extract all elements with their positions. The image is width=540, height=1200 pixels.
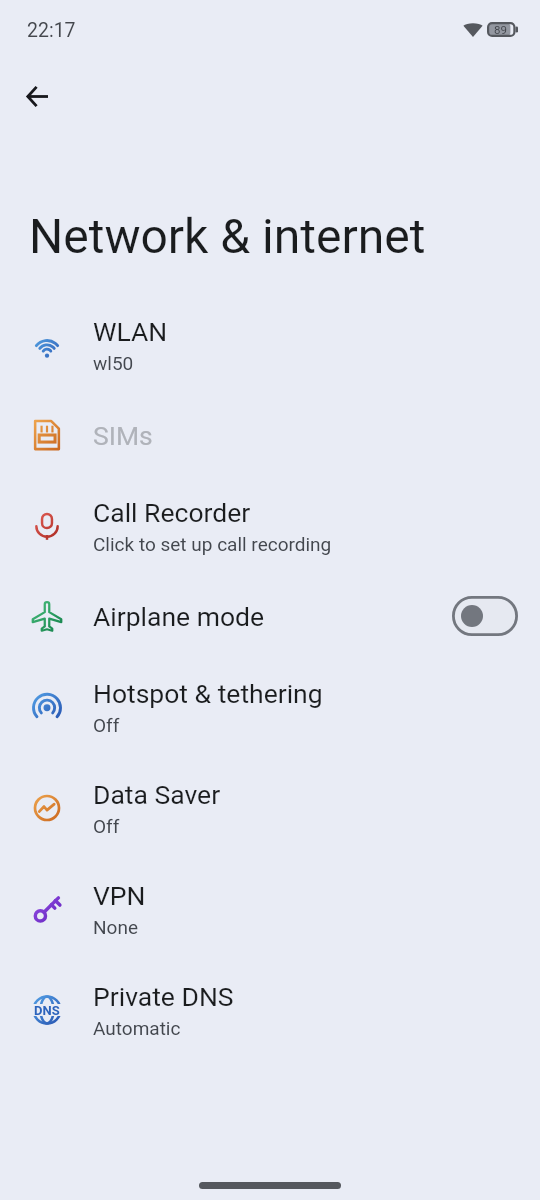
staticText: VPN bbox=[93, 880, 146, 911]
staticText: Off bbox=[93, 815, 120, 837]
staticText: Off bbox=[93, 714, 120, 736]
button[interactable]: WLAN bbox=[0, 294, 540, 395]
button[interactable]: Airplane mode toggle bbox=[452, 596, 518, 636]
staticText: Automatic bbox=[93, 1017, 181, 1039]
button[interactable]: SIMs bbox=[0, 395, 540, 475]
staticText: DNS bbox=[34, 1003, 60, 1018]
staticText: 22:17 bbox=[27, 19, 76, 42]
button[interactable]: Hotspot & tethering bbox=[0, 656, 540, 757]
staticText: Call Recorder bbox=[93, 497, 251, 528]
staticText: wl50 bbox=[93, 352, 134, 374]
button[interactable]: VPN bbox=[0, 858, 540, 959]
button[interactable]: DNS bbox=[0, 959, 540, 1060]
staticText: Private DNS bbox=[93, 981, 234, 1012]
staticText: Network & internet bbox=[29, 208, 426, 264]
staticText: Hotspot & tethering bbox=[93, 678, 323, 709]
staticText: WLAN bbox=[93, 316, 168, 347]
staticText: 89 bbox=[494, 23, 507, 36]
button[interactable]: Call Recorder bbox=[0, 475, 540, 576]
staticText: None bbox=[93, 916, 138, 938]
staticText: Data Saver bbox=[93, 779, 221, 810]
staticText: Airplane mode bbox=[93, 601, 265, 632]
staticText: SIMs bbox=[93, 420, 153, 451]
button[interactable]: Back bbox=[13, 72, 61, 120]
button[interactable]: Data Saver bbox=[0, 757, 540, 858]
staticText: Click to set up call recording bbox=[93, 533, 332, 555]
button[interactable]: Airplane mode bbox=[0, 576, 540, 656]
